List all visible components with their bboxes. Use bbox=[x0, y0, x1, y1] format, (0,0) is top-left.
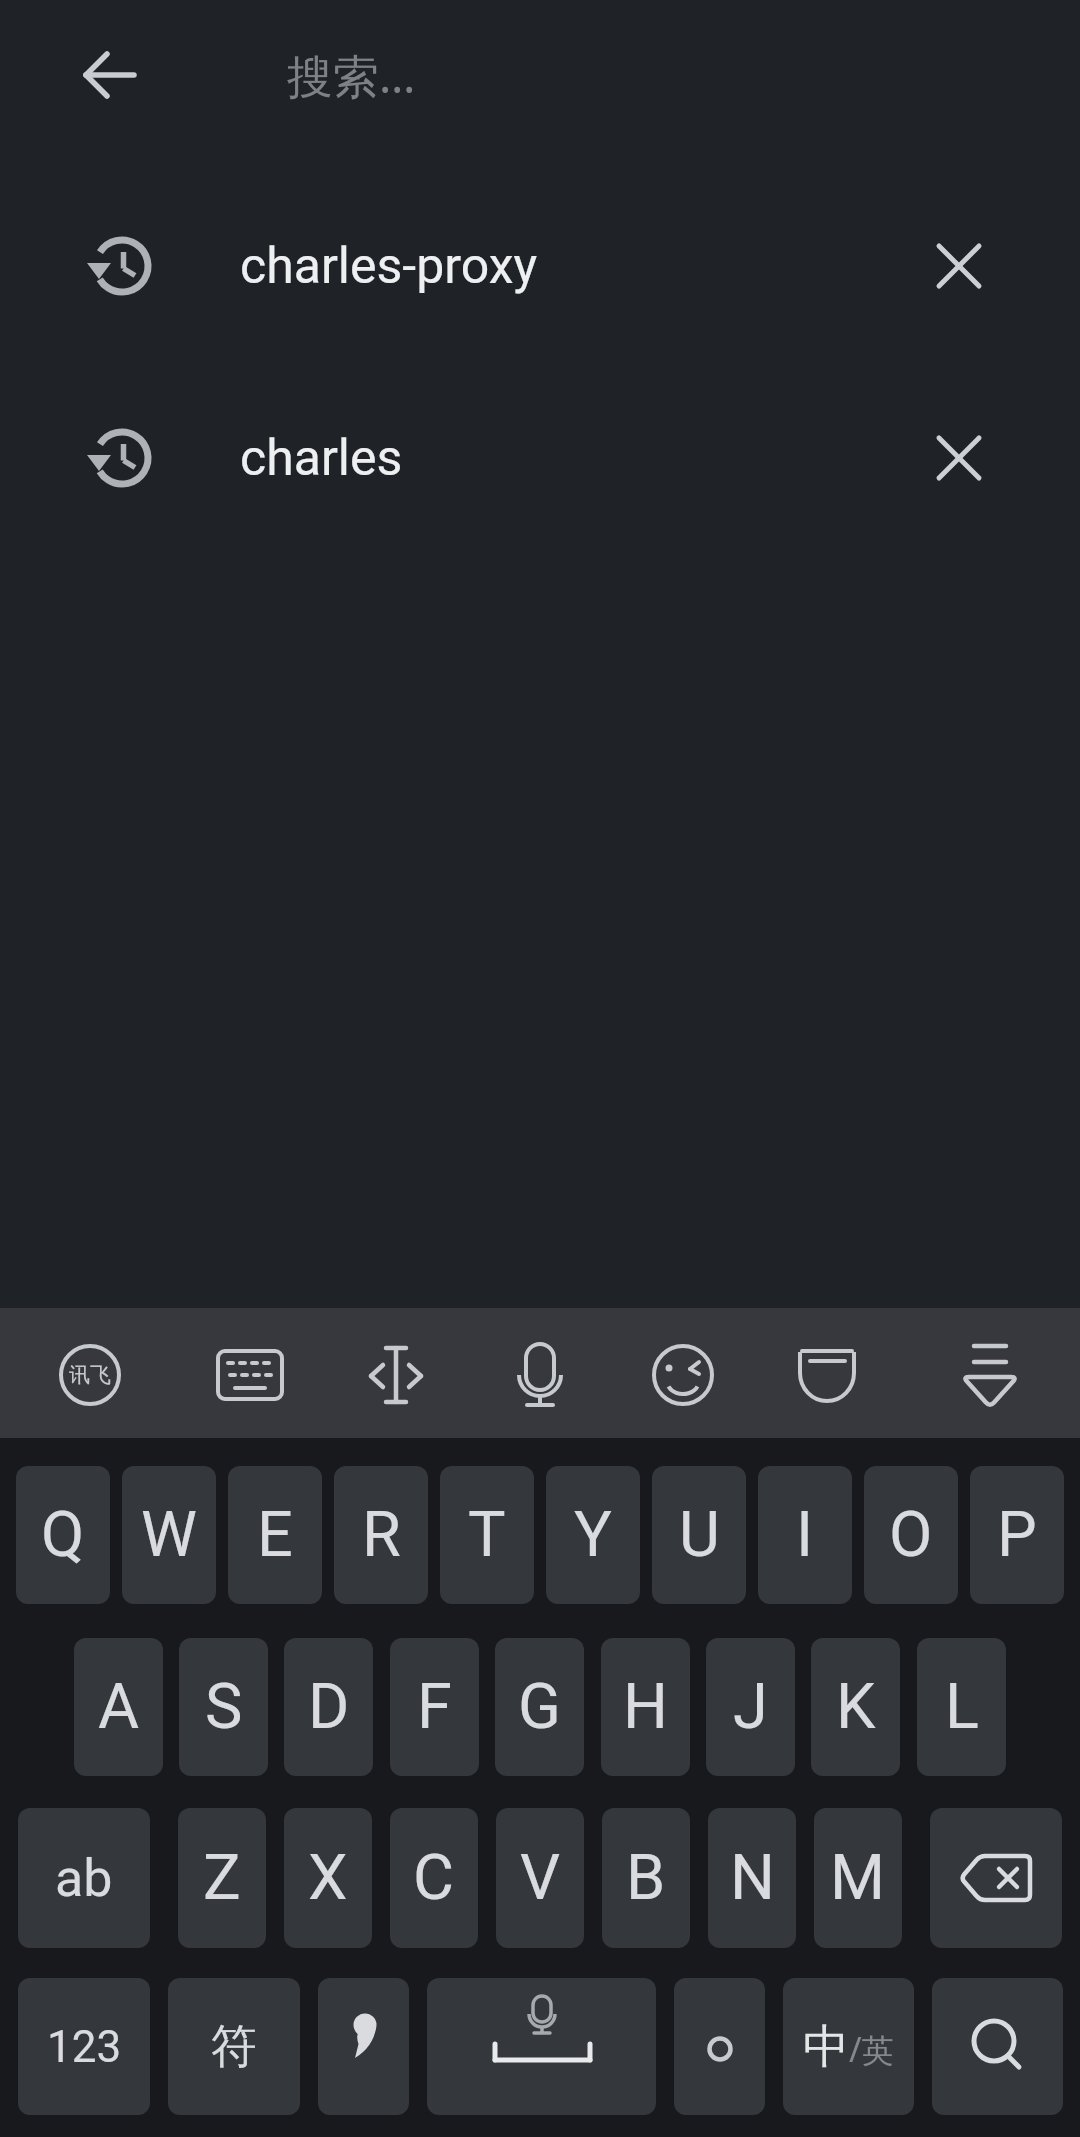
button[interactable] bbox=[909, 408, 1009, 508]
button[interactable]: H bbox=[601, 1638, 690, 1776]
button[interactable] bbox=[318, 1978, 409, 2115]
button[interactable]: Q bbox=[16, 1466, 110, 1604]
button[interactable]: N bbox=[708, 1808, 796, 1948]
button[interactable] bbox=[68, 33, 152, 117]
staticText: ab bbox=[55, 1848, 113, 1909]
button[interactable] bbox=[427, 1978, 656, 2115]
staticText: Q bbox=[41, 1498, 85, 1572]
staticText: 讯飞 bbox=[69, 1362, 111, 1388]
button[interactable]: R bbox=[334, 1466, 428, 1604]
staticText: Y bbox=[574, 1498, 612, 1572]
button[interactable]: K bbox=[811, 1638, 900, 1776]
staticText: A bbox=[98, 1670, 140, 1744]
button[interactable]: E bbox=[228, 1466, 322, 1604]
button[interactable]: 符 bbox=[168, 1978, 300, 2115]
button[interactable] bbox=[777, 1325, 877, 1425]
staticText: W bbox=[141, 1498, 197, 1572]
staticText: P bbox=[997, 1498, 1037, 1572]
staticText: H bbox=[623, 1670, 668, 1744]
button[interactable]: charles-proxy bbox=[0, 170, 1080, 362]
button[interactable]: S bbox=[179, 1638, 268, 1776]
button[interactable]: A bbox=[74, 1638, 163, 1776]
button[interactable]: ab bbox=[18, 1808, 150, 1948]
staticText: F bbox=[417, 1670, 452, 1744]
button[interactable]: F bbox=[390, 1638, 479, 1776]
button[interactable]: Y bbox=[546, 1466, 640, 1604]
button[interactable]: V bbox=[496, 1808, 584, 1948]
button[interactable]: T bbox=[440, 1466, 534, 1604]
button[interactable]: P bbox=[970, 1466, 1064, 1604]
button[interactable] bbox=[200, 1325, 300, 1425]
button[interactable]: 123 bbox=[18, 1978, 150, 2115]
button[interactable] bbox=[633, 1325, 733, 1425]
button[interactable]: M bbox=[814, 1808, 902, 1948]
staticText: M bbox=[830, 1841, 886, 1915]
staticText: L bbox=[945, 1670, 979, 1744]
staticText: R bbox=[362, 1498, 401, 1572]
button[interactable] bbox=[909, 216, 1009, 316]
button[interactable]: D bbox=[284, 1638, 373, 1776]
staticText: charles bbox=[240, 429, 403, 488]
staticText: charles-proxy bbox=[240, 237, 538, 296]
button[interactable]: U bbox=[652, 1466, 746, 1604]
button[interactable]: I bbox=[758, 1466, 852, 1604]
button[interactable]: L bbox=[917, 1638, 1006, 1776]
button[interactable]: J bbox=[706, 1638, 795, 1776]
staticText: I bbox=[796, 1498, 814, 1572]
button[interactable] bbox=[932, 1978, 1063, 2115]
staticText: 符 bbox=[211, 2018, 257, 2076]
button[interactable]: C bbox=[390, 1808, 478, 1948]
button[interactable]: 讯飞 bbox=[40, 1325, 140, 1425]
staticText: T bbox=[468, 1498, 506, 1572]
staticText: D bbox=[308, 1670, 350, 1744]
staticText: 123 bbox=[47, 2021, 122, 2073]
button[interactable] bbox=[346, 1325, 446, 1425]
button[interactable]: B bbox=[602, 1808, 690, 1948]
staticText: V bbox=[520, 1841, 561, 1915]
staticText: C bbox=[413, 1841, 455, 1915]
staticText: Z bbox=[203, 1841, 241, 1915]
staticText: E bbox=[257, 1498, 293, 1572]
button[interactable]: 中/英 bbox=[783, 1978, 914, 2115]
button[interactable] bbox=[930, 1808, 1062, 1948]
button[interactable]: W bbox=[122, 1466, 216, 1604]
staticText: O bbox=[889, 1498, 933, 1572]
staticText: N bbox=[730, 1841, 775, 1915]
button[interactable]: G bbox=[495, 1638, 584, 1776]
button[interactable] bbox=[490, 1325, 590, 1425]
staticText: K bbox=[836, 1670, 876, 1744]
staticText: S bbox=[205, 1670, 243, 1744]
staticText: X bbox=[308, 1841, 348, 1915]
button[interactable]: Z bbox=[178, 1808, 266, 1948]
staticText: 搜索… bbox=[287, 44, 416, 107]
button[interactable]: X bbox=[284, 1808, 372, 1948]
button[interactable]: charles bbox=[0, 362, 1080, 554]
staticText: J bbox=[733, 1670, 768, 1744]
staticText: G bbox=[518, 1670, 561, 1744]
button[interactable]: O bbox=[864, 1466, 958, 1604]
button[interactable] bbox=[940, 1325, 1040, 1425]
button[interactable] bbox=[674, 1978, 765, 2115]
staticText: B bbox=[626, 1841, 666, 1915]
staticText: 中/英 bbox=[803, 2018, 894, 2076]
staticText: U bbox=[679, 1498, 720, 1572]
